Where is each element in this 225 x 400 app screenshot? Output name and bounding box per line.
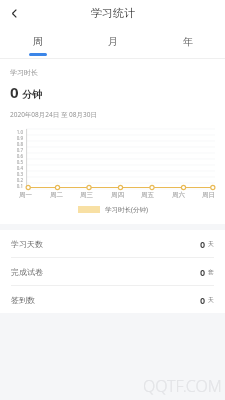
staticText: 0.2 — [16, 177, 23, 183]
staticText: 天 — [208, 296, 214, 304]
staticText: 学习统计 — [91, 6, 135, 20]
staticText: 0 — [200, 238, 206, 250]
staticText: 天 — [208, 240, 214, 248]
staticText: 1.0 — [16, 129, 23, 135]
staticText: 0.5 — [16, 159, 23, 165]
staticText: 套 — [208, 268, 214, 276]
staticText: 0 — [200, 294, 206, 306]
staticText: 完成试卷 — [11, 267, 43, 277]
button[interactable]: 完成试卷 — [0, 258, 225, 286]
staticText: 0.1 — [16, 183, 23, 189]
staticText: 学习时长(分钟) — [105, 205, 148, 214]
staticText: 0.3 — [16, 171, 23, 177]
staticText: 学习时长 — [10, 68, 38, 77]
button[interactable]: 年 — [150, 26, 225, 58]
staticText: 0.8 — [16, 141, 23, 147]
staticText: 周五 — [141, 191, 154, 199]
staticText: 周六 — [172, 191, 185, 199]
staticText: 周四 — [111, 191, 124, 199]
staticText: 分钟 — [22, 88, 42, 101]
button[interactable]: 周 — [0, 26, 75, 58]
staticText: 周日 — [202, 191, 215, 199]
staticText: 2020年08月24日 至 08月30日 — [10, 110, 97, 119]
staticText: 月 — [108, 35, 118, 48]
staticText: 学习天数 — [11, 239, 43, 249]
staticText: 周一 — [19, 191, 32, 199]
staticText: 0.9 — [16, 135, 23, 141]
button[interactable]: 学习天数 — [0, 230, 225, 258]
staticText: 0.4 — [16, 165, 23, 171]
staticText: 0.7 — [16, 147, 23, 153]
button[interactable]: 月 — [75, 26, 150, 58]
staticText: 周 — [33, 35, 43, 48]
staticText: QQTF.COM — [143, 375, 222, 397]
button[interactable]: Back — [3, 2, 25, 24]
staticText: 周三 — [80, 191, 93, 199]
button[interactable]: 签到数 — [0, 286, 225, 313]
staticText: 签到数 — [11, 295, 35, 305]
staticText: 0.6 — [16, 153, 23, 159]
staticText: 周二 — [50, 191, 63, 199]
staticText: 0 — [200, 266, 206, 278]
staticText: 年 — [183, 35, 193, 48]
staticText: 0 — [10, 82, 19, 102]
